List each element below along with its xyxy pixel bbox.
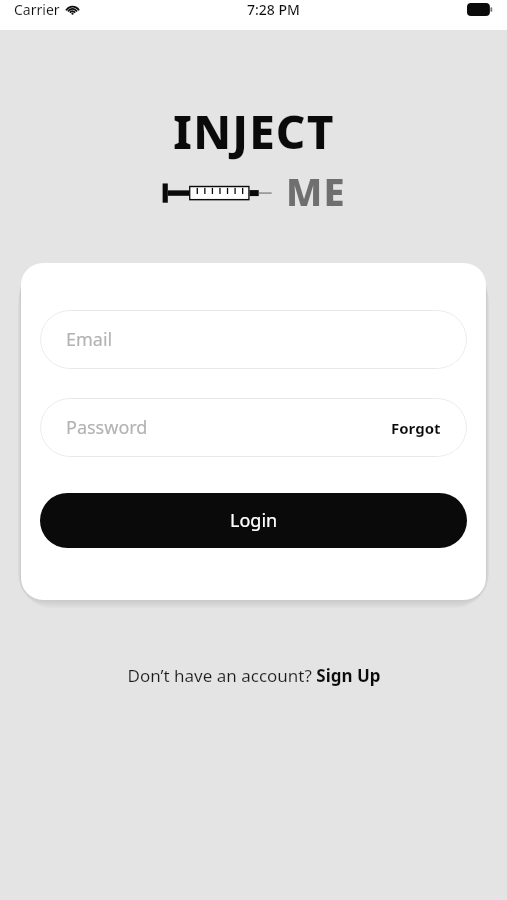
staticText: INJECT [173,100,335,163]
staticText: ME [286,165,346,217]
button[interactable]: Forgot [391,418,441,438]
staticText: Forgot [391,418,441,438]
staticText: 7:28 PM [247,0,300,19]
button[interactable]: Password [40,398,467,457]
staticText: Don’t have an account? Sign Up [127,664,381,687]
button[interactable]: Login [40,493,467,548]
staticText: Login [230,508,278,533]
staticText: Email [66,327,113,352]
button[interactable]: Email [40,310,467,369]
staticText: Carrier [14,0,60,19]
button[interactable]: Don’t have an account? Sign Up [117,660,391,691]
staticText: Password [66,415,148,440]
